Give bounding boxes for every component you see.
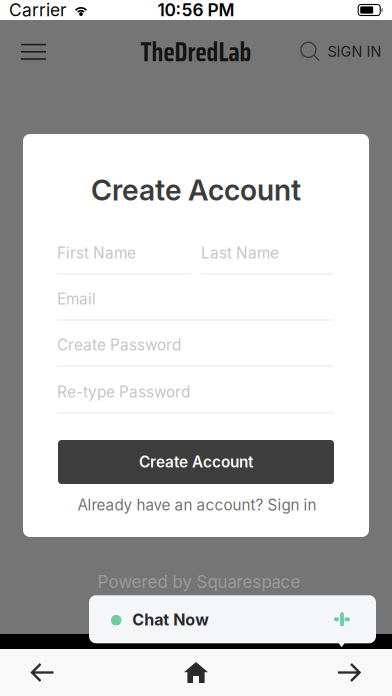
button[interactable]: Home [159, 649, 233, 696]
staticText: Create Account [91, 173, 301, 207]
staticText: Chat Now [132, 610, 209, 629]
button[interactable]: SIGN IN [321, 36, 387, 66]
staticText: Carrier [9, 0, 67, 20]
button[interactable]: TheDredLab [140, 37, 251, 67]
staticText: Re-type Password [57, 383, 190, 401]
staticText: TheDredLab [140, 32, 251, 73]
staticText: Last Name [201, 244, 279, 262]
button[interactable]: Menu [11, 32, 55, 72]
button[interactable]: Create Account [58, 440, 334, 484]
staticText: SIGN IN [327, 43, 381, 60]
button[interactable]: Already have an account? Sign in [57, 494, 337, 516]
staticText: Create Account [139, 453, 253, 471]
button[interactable]: Forward [312, 649, 386, 696]
staticText: 10:56 PM [157, 0, 234, 20]
staticText: Already have an account? Sign in [77, 496, 316, 514]
staticText: Email [57, 290, 96, 308]
staticText: First Name [57, 244, 136, 262]
button[interactable]: Search [296, 36, 324, 66]
button[interactable]: Back [6, 649, 80, 696]
button[interactable]: Chat Now [89, 595, 376, 648]
staticText: Powered by Squarespace [97, 572, 300, 592]
staticText: Create Password [57, 336, 181, 354]
